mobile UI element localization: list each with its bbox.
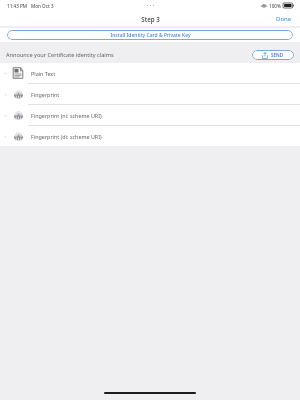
staticText: Fingerprint (ni: scheme URI) (31, 112, 102, 119)
staticText: Fingerprint (di: scheme URI) (31, 133, 102, 140)
staticText: Install Identity Card & Private Key (110, 32, 191, 39)
button[interactable]: Fingerprint (0, 84, 300, 104)
button[interactable]: Install Identity Card & Private Key (7, 30, 293, 40)
staticText: Done (276, 15, 292, 23)
button[interactable]: Fingerprint (ni: scheme URI) (0, 105, 300, 125)
staticText: 100% (269, 3, 281, 9)
button[interactable]: Done (268, 12, 300, 26)
staticText: Fingerprint (31, 91, 60, 98)
staticText: Mon Oct 3 (31, 3, 54, 9)
staticText: 11:43 PM (7, 3, 27, 9)
staticText: Step 3 (141, 15, 160, 23)
staticText: Plain Text (31, 70, 56, 77)
button[interactable]: Fingerprint (di: scheme URI) (0, 126, 300, 146)
staticText: Announce your Certificate identity claim… (6, 51, 114, 59)
staticText: SEND (271, 52, 284, 58)
button[interactable]: SEND (252, 50, 294, 60)
button[interactable]: Plain Text (0, 63, 300, 83)
